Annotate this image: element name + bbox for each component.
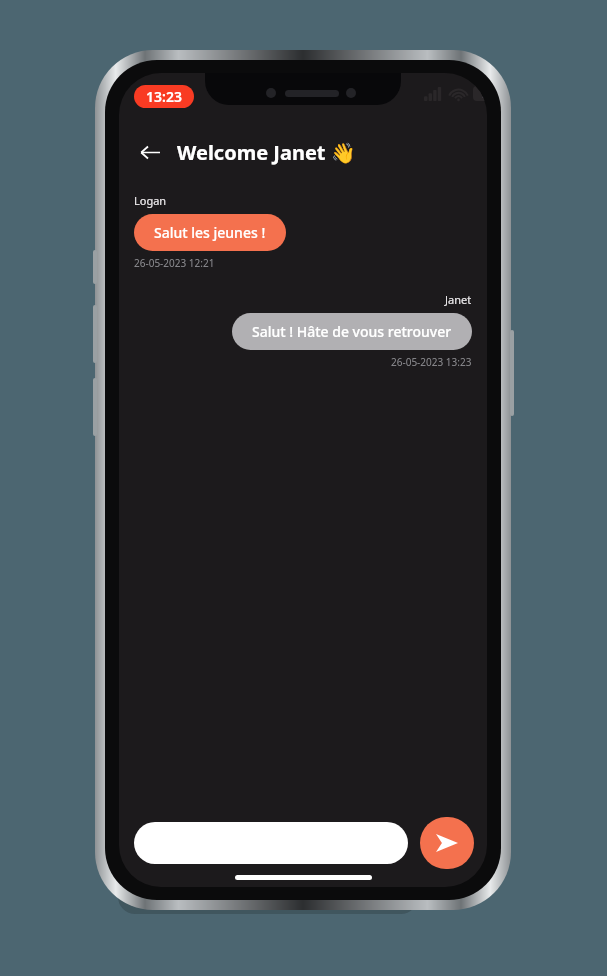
staticText: 13:23: [146, 87, 182, 106]
staticText: Salut les jeunes !: [154, 223, 266, 242]
staticText: 32: [482, 88, 487, 100]
staticText: 26-05-2023 12:21: [134, 256, 215, 270]
staticText: Welcome Janet 👋: [177, 139, 356, 166]
staticText: Salut ! Hâte de vous retrouver: [252, 322, 452, 341]
staticText: Janet: [445, 292, 472, 307]
button[interactable]: Send: [420, 817, 474, 869]
button[interactable]: Salut ! Hâte de vous retrouver: [232, 313, 472, 350]
button[interactable]: Back: [133, 135, 167, 169]
button[interactable]: Salut les jeunes !: [134, 214, 286, 251]
staticText: Logan: [134, 193, 167, 208]
staticText: 26-05-2023 13:23: [391, 355, 472, 369]
button[interactable]: Message input: [134, 822, 408, 864]
